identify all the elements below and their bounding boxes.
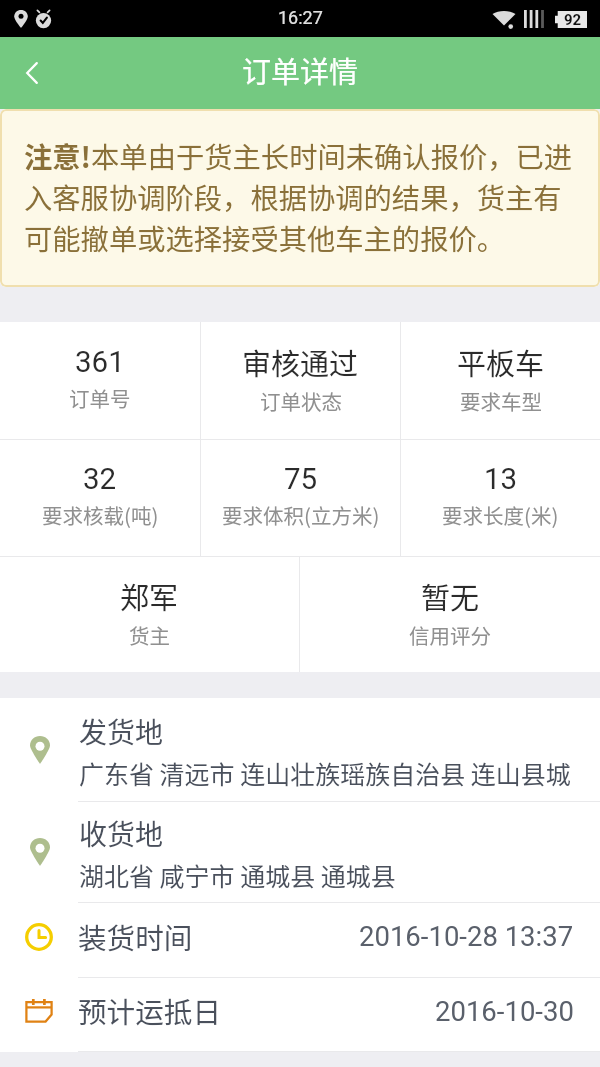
staticText: 32 [83, 462, 117, 497]
staticText: 发货地 [79, 711, 164, 752]
staticText: 要求长度(米) [442, 500, 559, 530]
button[interactable]: 审核通过 [201, 322, 400, 439]
staticText: 要求体积(立方米) [222, 500, 380, 530]
staticText: 湖北省 咸宁市 通城县 通城县 [79, 857, 396, 893]
staticText: 预计运抵日 [78, 990, 221, 1031]
staticText: 16:27 [278, 7, 323, 28]
button[interactable]: 发货地 [0, 698, 600, 801]
button[interactable]: 郑军 [0, 557, 299, 672]
button[interactable]: 平板车 [401, 322, 600, 439]
staticText: 要求车型 [460, 386, 542, 416]
staticText: 订单状态 [260, 386, 342, 416]
button[interactable]: 75 [201, 440, 400, 556]
button[interactable]: 预计运抵日 [0, 978, 600, 1051]
staticText: 广东省 清远市 连山壮族瑶族自治县 连山县城 [79, 755, 571, 791]
staticText: 2016-10-30 [435, 995, 574, 1027]
button[interactable]: 13 [401, 440, 600, 556]
staticText: 注意!本单由于货主长时间未确认报价，已进入客服协调阶段，根据协调的结果，货主有可… [24, 135, 584, 258]
button[interactable]: 装货时间 [0, 903, 600, 977]
staticText: 信用评分 [409, 620, 491, 650]
button[interactable]: Back [0, 42, 62, 104]
staticText: 暂无 [421, 575, 480, 617]
staticText: 平板车 [457, 341, 545, 383]
button[interactable]: 暂无 [300, 557, 600, 672]
staticText: 订单详情 [242, 49, 359, 91]
staticText: 92 [564, 11, 582, 28]
staticText: 审核通过 [242, 341, 359, 383]
staticText: 装货时间 [78, 916, 193, 957]
button[interactable]: 361 [0, 322, 200, 439]
staticText: 13 [484, 462, 518, 497]
button[interactable]: 收货地 [0, 802, 600, 902]
staticText: 收货地 [79, 813, 164, 854]
staticText: 2016-10-28 13:37 [359, 920, 574, 952]
staticText: 要求核载(吨) [42, 500, 159, 530]
staticText: 361 [75, 345, 125, 380]
staticText: 75 [284, 462, 318, 497]
staticText: 郑军 [120, 575, 179, 617]
button[interactable]: 32 [0, 440, 200, 556]
staticText: 货主 [129, 620, 170, 650]
staticText: 订单号 [69, 383, 131, 413]
